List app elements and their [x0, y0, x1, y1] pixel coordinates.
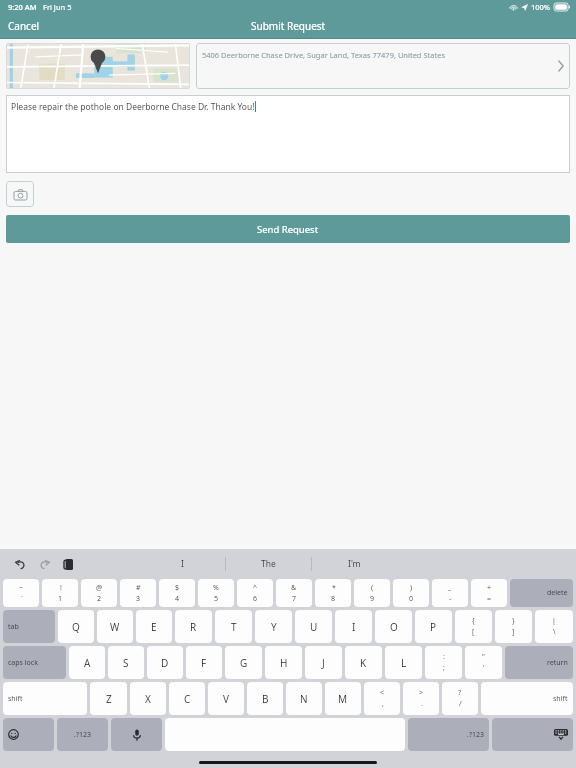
button[interactable]: O [375, 610, 412, 643]
button[interactable]: return [505, 646, 573, 679]
button[interactable]: T [215, 610, 252, 643]
button[interactable]: _ [432, 579, 468, 607]
button[interactable]: { [455, 610, 492, 643]
button[interactable]: J [305, 646, 342, 679]
button[interactable]: < [364, 682, 400, 715]
staticText: H [280, 656, 288, 670]
button[interactable]: I [335, 610, 372, 643]
button[interactable]: Add photo [6, 181, 34, 207]
button[interactable]: Redo [34, 554, 54, 574]
button[interactable]: N [286, 682, 322, 715]
staticText: B [262, 692, 269, 706]
staticText: G [240, 656, 248, 670]
staticText: K [360, 656, 367, 670]
button[interactable]: V [208, 682, 244, 715]
button[interactable]: # [120, 579, 156, 607]
staticText: ] [512, 627, 515, 637]
button[interactable]: L [385, 646, 422, 679]
button[interactable]: ( [354, 579, 390, 607]
staticText: @ [96, 583, 103, 593]
staticText: E [151, 620, 157, 634]
button[interactable]: A [69, 646, 105, 679]
staticText: & [291, 583, 297, 593]
button[interactable]: The [226, 549, 311, 579]
button[interactable]: > [403, 682, 439, 715]
staticText: Please repair the pothole on Deerborne C… [11, 101, 255, 113]
button[interactable]: Hide keyboard [492, 718, 573, 751]
button[interactable]: R [175, 610, 212, 643]
button[interactable]: @ [81, 579, 117, 607]
staticText: + [487, 583, 492, 593]
button[interactable]: tab [3, 610, 55, 643]
button[interactable]: + [471, 579, 507, 607]
button[interactable]: .?123 [57, 718, 108, 751]
button[interactable]: S [108, 646, 144, 679]
button[interactable]: H [265, 646, 302, 679]
button[interactable]: Map location [6, 43, 190, 89]
staticText: 6 [253, 594, 258, 604]
button[interactable]: .?123 [408, 718, 489, 751]
staticText: C [184, 692, 191, 706]
staticText: Fri Jun 5 [43, 2, 72, 12]
button[interactable]: Paste [58, 554, 78, 574]
staticText: L [401, 656, 407, 670]
button[interactable]: I'm [312, 549, 397, 579]
staticText: . [421, 699, 423, 709]
button[interactable]: C [169, 682, 205, 715]
button[interactable]: delete [510, 579, 573, 607]
button[interactable]: E [136, 610, 172, 643]
button[interactable]: Cancel [0, 14, 48, 38]
button[interactable]: | [535, 610, 573, 643]
button[interactable]: shift [481, 682, 573, 715]
staticText: \ [553, 627, 556, 637]
button[interactable]: Z [90, 682, 127, 715]
button[interactable]: Emoji [3, 718, 54, 751]
button[interactable]: Y [255, 610, 292, 643]
button[interactable]: D [147, 646, 183, 679]
button[interactable]: * [315, 579, 351, 607]
button[interactable]: " [465, 646, 502, 679]
staticText: : [443, 652, 445, 662]
button[interactable]: Q [58, 610, 94, 643]
button[interactable]: $ [159, 579, 195, 607]
button[interactable]: : [425, 646, 462, 679]
button[interactable]: P [415, 610, 452, 643]
staticText: delete [547, 588, 568, 598]
button[interactable]: shift [3, 682, 87, 715]
button[interactable]: Dictation [111, 718, 162, 751]
button[interactable]: X [130, 682, 166, 715]
button[interactable]: Please repair the pothole on Deerborne C… [6, 95, 570, 173]
staticText: Send Request [257, 223, 319, 236]
button[interactable]: W [97, 610, 133, 643]
button[interactable]: ! [42, 579, 78, 607]
staticText: " [482, 652, 485, 662]
button[interactable]: % [198, 579, 234, 607]
staticText: O [390, 620, 398, 634]
staticText: W [110, 620, 120, 634]
button[interactable]: B [247, 682, 283, 715]
button[interactable]: K [345, 646, 382, 679]
button[interactable]: G [225, 646, 262, 679]
button[interactable]: Undo [10, 554, 30, 574]
staticText: T [231, 620, 237, 634]
button[interactable]: I [140, 549, 225, 579]
button[interactable]: ~ [3, 579, 39, 607]
staticText: .?123 [467, 730, 484, 740]
button[interactable]: ? [442, 682, 478, 715]
staticText: ) [410, 583, 413, 593]
button[interactable]: M [325, 682, 361, 715]
staticText: $ [175, 583, 180, 593]
staticText: I [181, 558, 184, 570]
button[interactable]: F [186, 646, 222, 679]
button[interactable]: Send Request [6, 215, 570, 243]
button[interactable]: U [295, 610, 332, 643]
button[interactable]: ^ [237, 579, 273, 607]
button[interactable]: } [495, 610, 532, 643]
button[interactable]: ) [393, 579, 429, 607]
button[interactable]: & [276, 579, 312, 607]
staticText: / [459, 699, 462, 709]
staticText: ` [21, 594, 23, 604]
button[interactable]: 5406 Deerborne Chase Drive, Sugar Land, … [196, 43, 570, 89]
button[interactable]: caps lock [3, 646, 66, 679]
